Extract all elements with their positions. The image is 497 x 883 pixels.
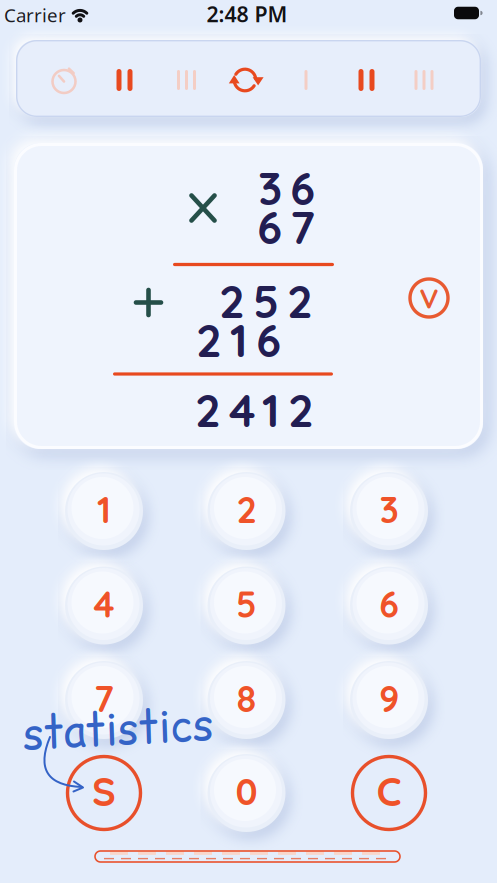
button[interactable]: 0 bbox=[207, 754, 285, 832]
staticText: 4 bbox=[93, 581, 114, 626]
staticText: S bbox=[92, 766, 116, 816]
staticText: 0 bbox=[235, 769, 257, 814]
staticText: 252 bbox=[219, 273, 313, 329]
button[interactable] bbox=[177, 70, 196, 90]
button[interactable] bbox=[414, 70, 433, 90]
staticText: 2412 bbox=[195, 382, 314, 438]
button[interactable]: C bbox=[352, 756, 426, 830]
button[interactable]: 6 bbox=[350, 566, 428, 644]
button[interactable]: 3 bbox=[350, 472, 428, 550]
staticText: 6 bbox=[379, 581, 399, 626]
button[interactable] bbox=[50, 64, 78, 95]
button[interactable]: 1 bbox=[65, 472, 143, 550]
button[interactable] bbox=[16, 40, 481, 117]
staticText: V bbox=[419, 280, 438, 315]
button[interactable] bbox=[230, 65, 260, 95]
staticText: Carrier bbox=[4, 3, 66, 27]
button[interactable] bbox=[116, 69, 132, 91]
button[interactable]: 4 bbox=[65, 566, 143, 644]
staticText: 2:48 PM bbox=[206, 0, 287, 28]
staticText: 3 bbox=[379, 487, 398, 532]
staticText: 36 bbox=[258, 160, 315, 216]
staticText: 7 bbox=[94, 676, 114, 721]
button[interactable]: S bbox=[67, 756, 141, 830]
staticText: C bbox=[376, 766, 401, 816]
button[interactable]: 2 bbox=[207, 472, 285, 550]
button[interactable] bbox=[358, 69, 374, 91]
staticText: 67 bbox=[257, 199, 315, 255]
staticText: 9 bbox=[379, 676, 399, 721]
staticText: 2 bbox=[236, 487, 256, 532]
button[interactable]: 7 bbox=[65, 661, 143, 739]
button[interactable]: 9 bbox=[350, 661, 428, 739]
button[interactable] bbox=[304, 70, 307, 90]
staticText: 216 bbox=[196, 312, 281, 368]
button[interactable]: V bbox=[408, 277, 450, 319]
staticText: 8 bbox=[236, 676, 256, 721]
staticText: 1 bbox=[97, 487, 111, 532]
button[interactable]: 8 bbox=[207, 661, 285, 739]
staticText: statistics bbox=[22, 699, 213, 759]
button[interactable]: 5 bbox=[207, 566, 285, 644]
staticText: 5 bbox=[236, 581, 257, 626]
